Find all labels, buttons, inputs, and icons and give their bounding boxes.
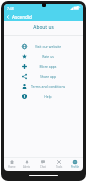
- staticText: Profile: [71, 165, 79, 169]
- staticText: More apps: [27, 64, 69, 69]
- staticText: Visit our website: [27, 44, 69, 49]
- button[interactable]: Home: [4, 158, 19, 171]
- button[interactable]: Visit our website: [4, 41, 83, 51]
- button[interactable]: Tools: [51, 158, 67, 171]
- staticText: Help: [27, 94, 69, 99]
- staticText: About us: [4, 24, 83, 31]
- button[interactable]: Alerts: [19, 158, 35, 171]
- staticText: Ascendid: [12, 14, 32, 20]
- staticText: 7:48: [7, 6, 14, 11]
- button[interactable]: Back: [4, 13, 12, 21]
- staticText: Chat: [40, 165, 46, 169]
- button[interactable]: Chat: [35, 158, 51, 171]
- button[interactable]: Profile: [67, 158, 83, 171]
- staticText: Terms and conditions: [27, 84, 69, 89]
- staticText: Share app: [27, 74, 69, 79]
- button[interactable]: Rate us: [4, 51, 83, 61]
- button[interactable]: More apps: [4, 61, 83, 71]
- button[interactable]: Terms and conditions: [4, 81, 83, 91]
- button[interactable]: Share app: [4, 71, 83, 81]
- staticText: Alerts: [23, 165, 31, 169]
- staticText: Tools: [56, 165, 63, 169]
- staticText: Rate us: [27, 54, 69, 59]
- button[interactable]: Help: [4, 91, 83, 101]
- staticText: Home: [8, 165, 16, 169]
